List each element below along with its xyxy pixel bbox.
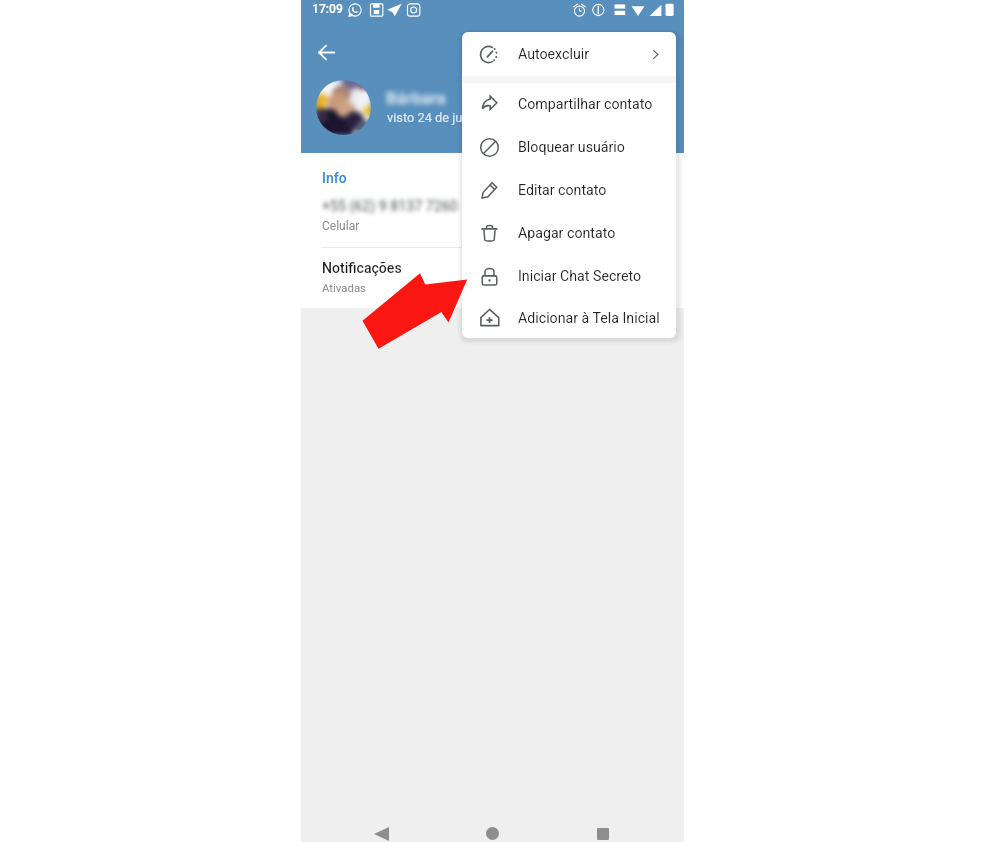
staticText: Compartilhar contato xyxy=(518,96,653,113)
button[interactable]: Iniciar Chat Secreto xyxy=(462,255,676,298)
staticText: visto 24 de julho xyxy=(387,110,480,125)
staticText: Adicionar à Tela Inicial xyxy=(518,310,660,327)
staticText: Bárbara xyxy=(386,88,446,108)
button[interactable]: Home xyxy=(477,825,507,842)
button[interactable]: Editar contato xyxy=(462,169,676,212)
staticText: Notificações xyxy=(322,260,402,277)
button[interactable]: Compartilhar contato xyxy=(462,83,676,126)
button[interactable]: Info xyxy=(301,153,684,248)
button[interactable]: Bloquear usuário xyxy=(462,126,676,169)
button[interactable]: Apagar contato xyxy=(462,212,676,255)
button[interactable]: Back xyxy=(306,32,346,72)
button[interactable]: Adicionar à Tela Inicial xyxy=(462,298,676,338)
staticText: Info xyxy=(322,170,347,186)
staticText: Editar contato xyxy=(518,182,607,199)
button[interactable]: Autoexcluir xyxy=(462,32,676,76)
button[interactable]: Notificações xyxy=(301,248,684,308)
button[interactable]: Back xyxy=(366,825,396,842)
staticText: Celular xyxy=(322,219,360,233)
staticText: Apagar contato xyxy=(518,225,616,242)
staticText: Iniciar Chat Secreto xyxy=(518,268,642,285)
staticText: +55 (62) 9 8137 7260 xyxy=(322,198,458,215)
staticText: Ativadas xyxy=(322,281,366,294)
staticText: 17:09 xyxy=(312,2,343,16)
staticText: Autoexcluir xyxy=(518,46,589,63)
staticText: Bloquear usuário xyxy=(518,139,625,156)
button[interactable]: Recents xyxy=(588,825,618,842)
